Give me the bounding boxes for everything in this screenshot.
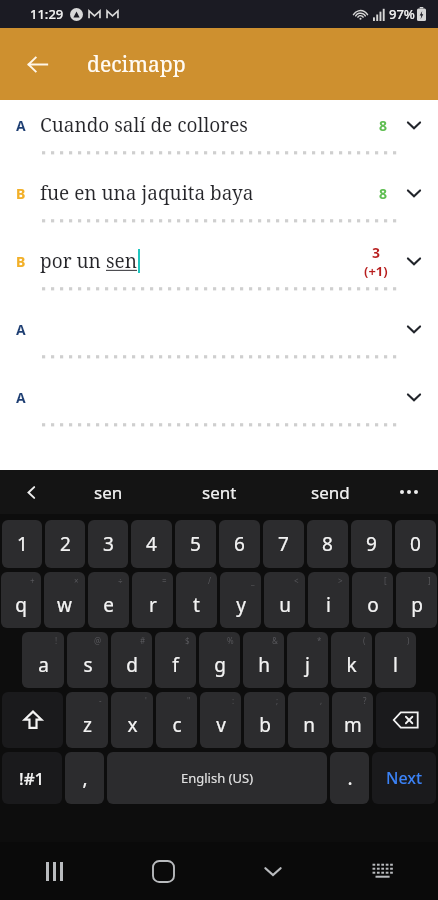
staticText: send	[311, 481, 350, 504]
button[interactable]: More options	[392, 475, 426, 509]
button[interactable]: "	[156, 692, 197, 748]
button[interactable]: Hide keyboard	[218, 842, 328, 900]
staticText: v	[216, 712, 226, 738]
button[interactable]: A	[0, 372, 438, 440]
button[interactable]: @	[67, 632, 108, 688]
button[interactable]: Previous suggestions	[14, 475, 48, 509]
staticText: c	[172, 712, 182, 738]
staticText: .	[347, 765, 353, 791]
staticText: 6	[234, 531, 245, 557]
button[interactable]: B	[0, 236, 438, 304]
staticText: ,	[320, 695, 323, 706]
button[interactable]: *	[287, 632, 328, 688]
button[interactable]: ,	[288, 692, 329, 748]
staticText: o	[367, 592, 379, 618]
staticText: z	[83, 712, 92, 738]
button[interactable]: ?	[332, 692, 373, 748]
button[interactable]: (	[331, 632, 372, 688]
button[interactable]: 5	[175, 520, 216, 568]
button[interactable]: Expand	[402, 385, 426, 409]
button[interactable]: 7	[263, 520, 304, 568]
staticText: ÷	[118, 575, 123, 586]
staticText: 2	[60, 531, 71, 557]
button[interactable]: ,	[65, 752, 104, 804]
button[interactable]: <	[264, 572, 305, 628]
staticText: ]	[428, 575, 431, 586]
button[interactable]: A	[0, 100, 438, 168]
staticText: English (US)	[181, 769, 254, 787]
button[interactable]: English (US)	[107, 752, 327, 804]
staticText: p	[411, 592, 423, 618]
staticText: -	[99, 695, 102, 706]
button[interactable]: ;	[244, 692, 285, 748]
button[interactable]: :	[200, 692, 241, 748]
button[interactable]: +	[1, 572, 41, 628]
button[interactable]: !	[22, 632, 64, 688]
button[interactable]: >	[308, 572, 349, 628]
button[interactable]: 6	[219, 520, 260, 568]
button[interactable]: Back	[14, 41, 60, 87]
button[interactable]: Shift	[2, 692, 63, 748]
button[interactable]: Expand	[402, 113, 426, 137]
staticText: 5	[190, 531, 201, 557]
button[interactable]: '	[111, 692, 153, 748]
staticText: A	[16, 320, 26, 339]
button[interactable]: _	[220, 572, 261, 628]
button[interactable]: 8	[307, 520, 348, 568]
staticText: $	[185, 635, 190, 646]
button[interactable]: B	[0, 168, 438, 236]
button[interactable]: sent	[164, 470, 275, 514]
button[interactable]: 3	[88, 520, 128, 568]
button[interactable]: A	[0, 304, 438, 372]
button[interactable]: Switch keyboard	[328, 842, 438, 900]
staticText: &	[272, 635, 278, 646]
button[interactable]: %	[199, 632, 240, 688]
button[interactable]: ]	[396, 572, 437, 628]
button[interactable]: #	[111, 632, 152, 688]
button[interactable]: 1	[2, 520, 42, 568]
button[interactable]: =	[132, 572, 173, 628]
button[interactable]: sen	[52, 470, 164, 514]
staticText: #	[140, 635, 146, 646]
button[interactable]: -	[66, 692, 108, 748]
staticText: _	[251, 575, 255, 586]
staticText: 11:29	[30, 5, 64, 23]
staticText: j	[305, 652, 310, 678]
button[interactable]: Backspace	[376, 692, 436, 748]
button[interactable]: send	[275, 470, 386, 514]
button[interactable]: Expand	[402, 181, 426, 205]
button[interactable]: [	[352, 572, 393, 628]
button[interactable]: 2	[45, 520, 85, 568]
staticText: 4	[146, 531, 157, 557]
staticText: *	[317, 635, 322, 646]
staticText: 8	[322, 531, 333, 557]
button[interactable]: /	[176, 572, 217, 628]
staticText: <	[294, 575, 299, 586]
staticText: /	[208, 575, 211, 586]
button[interactable]: Recents	[0, 842, 109, 900]
staticText: [	[384, 575, 387, 586]
button[interactable]: ÷	[88, 572, 129, 628]
button[interactable]: &	[243, 632, 284, 688]
staticText: w	[57, 592, 72, 618]
button[interactable]: ×	[44, 572, 85, 628]
button[interactable]: Home	[109, 842, 218, 900]
staticText: 1	[17, 531, 28, 557]
staticText: a	[38, 652, 49, 678]
button[interactable]: Expand	[402, 249, 426, 273]
staticText: B	[16, 252, 26, 271]
staticText: fue en una jaquita baya	[40, 180, 254, 206]
button[interactable]: $	[155, 632, 196, 688]
staticText: !#1	[19, 767, 45, 790]
staticText: r	[149, 592, 157, 618]
button[interactable]: .	[330, 752, 369, 804]
button[interactable]: )	[375, 632, 416, 688]
button[interactable]: 9	[351, 520, 392, 568]
button[interactable]: 0	[395, 520, 436, 568]
button[interactable]: 4	[131, 520, 172, 568]
staticText: m	[344, 712, 362, 738]
button[interactable]: Next	[372, 752, 436, 804]
button[interactable]: !#1	[2, 752, 62, 804]
staticText: 8	[379, 116, 388, 135]
button[interactable]: Expand	[402, 317, 426, 341]
